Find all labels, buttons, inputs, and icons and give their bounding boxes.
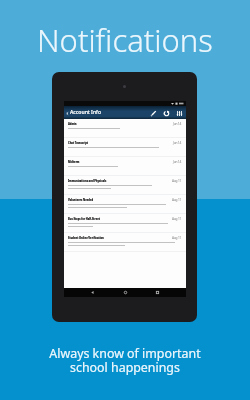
staticText: Midterm [68, 160, 80, 164]
staticText: Aug 11 [172, 179, 182, 183]
staticText: Notifications [37, 19, 213, 61]
staticText: Midterm [68, 160, 80, 164]
button[interactable]: Admin [64, 119, 186, 138]
button[interactable]: Navigate up [64, 106, 186, 119]
staticText: Bus Stops for Half-Street [68, 217, 100, 221]
button[interactable]: Volunteers Needed [64, 195, 186, 214]
staticText: Admin [68, 122, 77, 126]
button[interactable]: Chat Transcript [64, 138, 186, 157]
button[interactable]: Home [121, 288, 130, 297]
staticText: Bus Stops for Half-Street [68, 217, 100, 221]
staticText: Jun 14 [173, 122, 182, 126]
staticText: Chat Transcript [68, 141, 89, 145]
staticText: Account Info [70, 109, 102, 116]
button[interactable]: Immunizations and Physicals [64, 176, 186, 195]
staticText: Student Online Verification [68, 236, 104, 240]
staticText: Student Online Verification [68, 236, 104, 240]
staticText: Admin [68, 122, 77, 126]
button[interactable]: Refresh [162, 109, 170, 117]
staticText: Volunteers Needed [68, 198, 94, 202]
staticText: Immunizations and Physicals [68, 179, 107, 183]
button[interactable]: Edit [149, 109, 157, 117]
button[interactable]: Bus Stops for Half-Street [64, 214, 186, 233]
button[interactable]: Back [88, 288, 97, 297]
staticText: Immunizations and Physicals [68, 179, 107, 183]
button[interactable]: Navigate up [65, 111, 69, 115]
staticText: Aug 11 [172, 236, 182, 240]
button[interactable]: Recent apps [153, 288, 162, 297]
button[interactable]: Filter settings [175, 109, 183, 117]
staticText: Aug 11 [172, 217, 182, 221]
staticText: Jun 14 [173, 141, 182, 145]
staticText: Always know of important school happenin… [49, 345, 201, 376]
staticText: Aug 11 [172, 198, 182, 202]
staticText: Chat Transcript [68, 141, 89, 145]
button[interactable]: Student Online Verification [64, 233, 186, 252]
staticText: Jun 14 [173, 160, 182, 164]
button[interactable]: Midterm [64, 157, 186, 176]
staticText: Volunteers Needed [68, 198, 94, 202]
